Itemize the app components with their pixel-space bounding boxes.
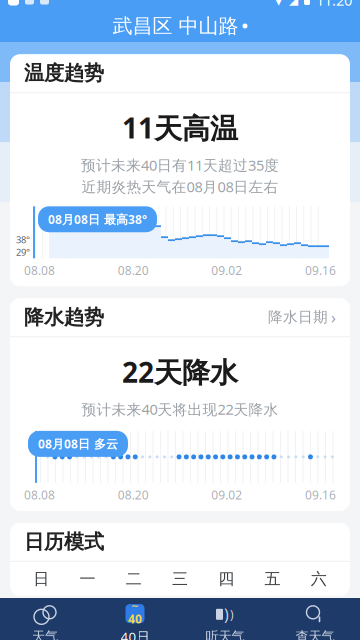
staticText: 22天降水 — [122, 353, 238, 390]
staticText: 08.08 — [24, 262, 55, 278]
staticText: 09.16 — [305, 487, 336, 503]
staticText: 40 — [128, 611, 142, 627]
staticText: 一 — [79, 569, 95, 589]
staticText: 11:20 — [316, 0, 352, 10]
staticText: 29° — [16, 246, 30, 258]
staticText: 09.02 — [211, 487, 242, 503]
staticText: 38° — [16, 233, 30, 246]
staticText: 08.20 — [118, 487, 149, 503]
staticText: 查天气 — [295, 628, 334, 640]
staticText: 天气 — [32, 628, 58, 640]
staticText: 日 — [33, 569, 49, 589]
staticText: 六 — [311, 569, 327, 589]
staticText: › — [331, 307, 336, 328]
button[interactable]: 降水日期 — [268, 307, 336, 328]
staticText: ▼ — [274, 0, 283, 7]
staticText: 四 — [218, 569, 234, 589]
staticText: 温度趋势 — [24, 61, 104, 85]
staticText: 08.08 — [24, 487, 55, 503]
button[interactable]: 天气 — [0, 598, 90, 640]
staticText: ◢ — [289, 0, 298, 7]
button[interactable]: 武昌区 中山路 — [0, 10, 360, 42]
staticText: 08.20 — [118, 262, 149, 278]
staticText: 五 — [265, 569, 281, 589]
staticText: 近期炎热天气在08月08日左右 — [81, 177, 278, 196]
staticText: 武昌区 中山路 — [112, 14, 238, 38]
staticText: ) — [230, 606, 234, 622]
staticText: 09.02 — [211, 262, 242, 278]
staticText: 降水趋势 — [24, 305, 104, 330]
button[interactable]: 查天气 — [270, 598, 360, 640]
staticText: 降水日期 — [268, 308, 328, 326]
staticText: ∼ — [131, 600, 139, 611]
button[interactable]: ) — [180, 598, 270, 640]
staticText: 预计未来40日有11天超过35度 — [81, 155, 279, 175]
button[interactable]: ∼ — [90, 598, 180, 640]
staticText: 40日 — [120, 628, 149, 640]
staticText: 09.16 — [305, 262, 336, 278]
staticText: ) — [224, 604, 229, 625]
staticText: 二 — [126, 569, 142, 589]
staticText: 预计未来40天将出现22天降水 — [81, 399, 278, 419]
staticText: 三 — [172, 569, 188, 589]
staticText: 08月08日 最高38° — [48, 211, 147, 227]
staticText: 08月08日 多云 — [38, 436, 118, 452]
staticText: 听天气 — [205, 628, 244, 640]
staticText: 日历模式 — [24, 530, 104, 554]
staticText: 11天高温 — [122, 109, 238, 146]
